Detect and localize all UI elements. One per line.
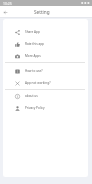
- staticText: Privacy Policy: [25, 106, 45, 110]
- staticText: Setting: [34, 9, 50, 15]
- staticText: App not working?: [25, 81, 51, 85]
- staticText: Rate this app: [25, 42, 44, 46]
- staticText: More Apps: [25, 54, 41, 58]
- staticText: How to use?: [25, 69, 43, 73]
- button[interactable]: about us: [3, 90, 88, 102]
- staticText: Share App: [25, 30, 40, 34]
- button[interactable]: How to use?: [3, 65, 88, 77]
- button[interactable]: More Apps: [3, 50, 88, 62]
- staticText: about us: [25, 94, 38, 98]
- button[interactable]: Share App: [3, 26, 88, 38]
- button[interactable]: Privacy Policy: [3, 102, 88, 114]
- button[interactable]: Rate this app: [3, 38, 88, 50]
- staticText: 10:25: [3, 1, 12, 6]
- button[interactable]: App not working?: [3, 77, 88, 89]
- button[interactable]: Back: [1, 8, 9, 16]
